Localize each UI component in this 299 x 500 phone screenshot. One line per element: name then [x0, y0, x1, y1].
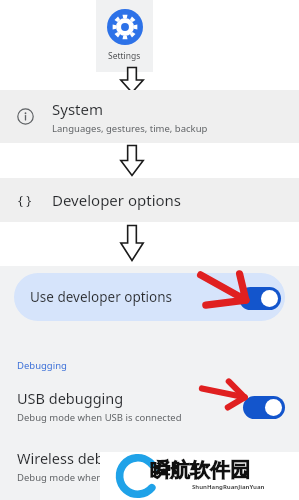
staticText: Settings: [108, 50, 141, 62]
button[interactable]: Settings: [96, 0, 153, 72]
staticText: USB debugging: [17, 388, 124, 408]
staticText: { }: [18, 191, 32, 209]
staticText: Use developer options: [30, 288, 173, 306]
staticText: Debug mode when USB is connected: [17, 411, 182, 424]
button[interactable]: { }: [0, 178, 299, 222]
button[interactable]: Use developer options: [14, 273, 285, 321]
staticText: Debugging: [17, 359, 67, 372]
other: Info: [17, 108, 34, 125]
staticText: ShunHangRuanJianYuan: [192, 483, 265, 491]
staticText: 瞬航软件园: [150, 458, 250, 483]
staticText: Languages, gestures, time, backup: [52, 122, 208, 135]
staticText: Wireless debugging: [17, 448, 153, 468]
staticText: System: [52, 99, 103, 119]
button[interactable]: USB debugging toggle: [243, 396, 285, 419]
staticText: Debug mode when Wi-Fi is connected: [17, 471, 185, 484]
button[interactable]: Wireless debugging: [0, 448, 299, 490]
other: Settings: [107, 9, 143, 45]
staticText: Developer options: [52, 190, 182, 210]
button[interactable]: USB debugging: [0, 388, 299, 430]
button[interactable]: Info: [0, 90, 299, 143]
button[interactable]: Use developer options toggle: [239, 287, 281, 310]
